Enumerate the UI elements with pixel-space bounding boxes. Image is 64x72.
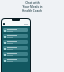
staticText: Health Coach xyxy=(22,9,42,13)
button[interactable]: Notes xyxy=(3,58,28,62)
staticText: Your Meals in xyxy=(22,5,43,9)
button[interactable]: Dinner xyxy=(3,40,28,44)
button[interactable]: Lunch xyxy=(3,34,28,38)
button[interactable]: Water xyxy=(3,52,28,56)
button[interactable]: Back xyxy=(3,23,5,25)
button[interactable]: Snack xyxy=(3,46,28,50)
staticText: Chat with xyxy=(25,1,40,5)
button[interactable]: Breakfast xyxy=(3,28,28,32)
